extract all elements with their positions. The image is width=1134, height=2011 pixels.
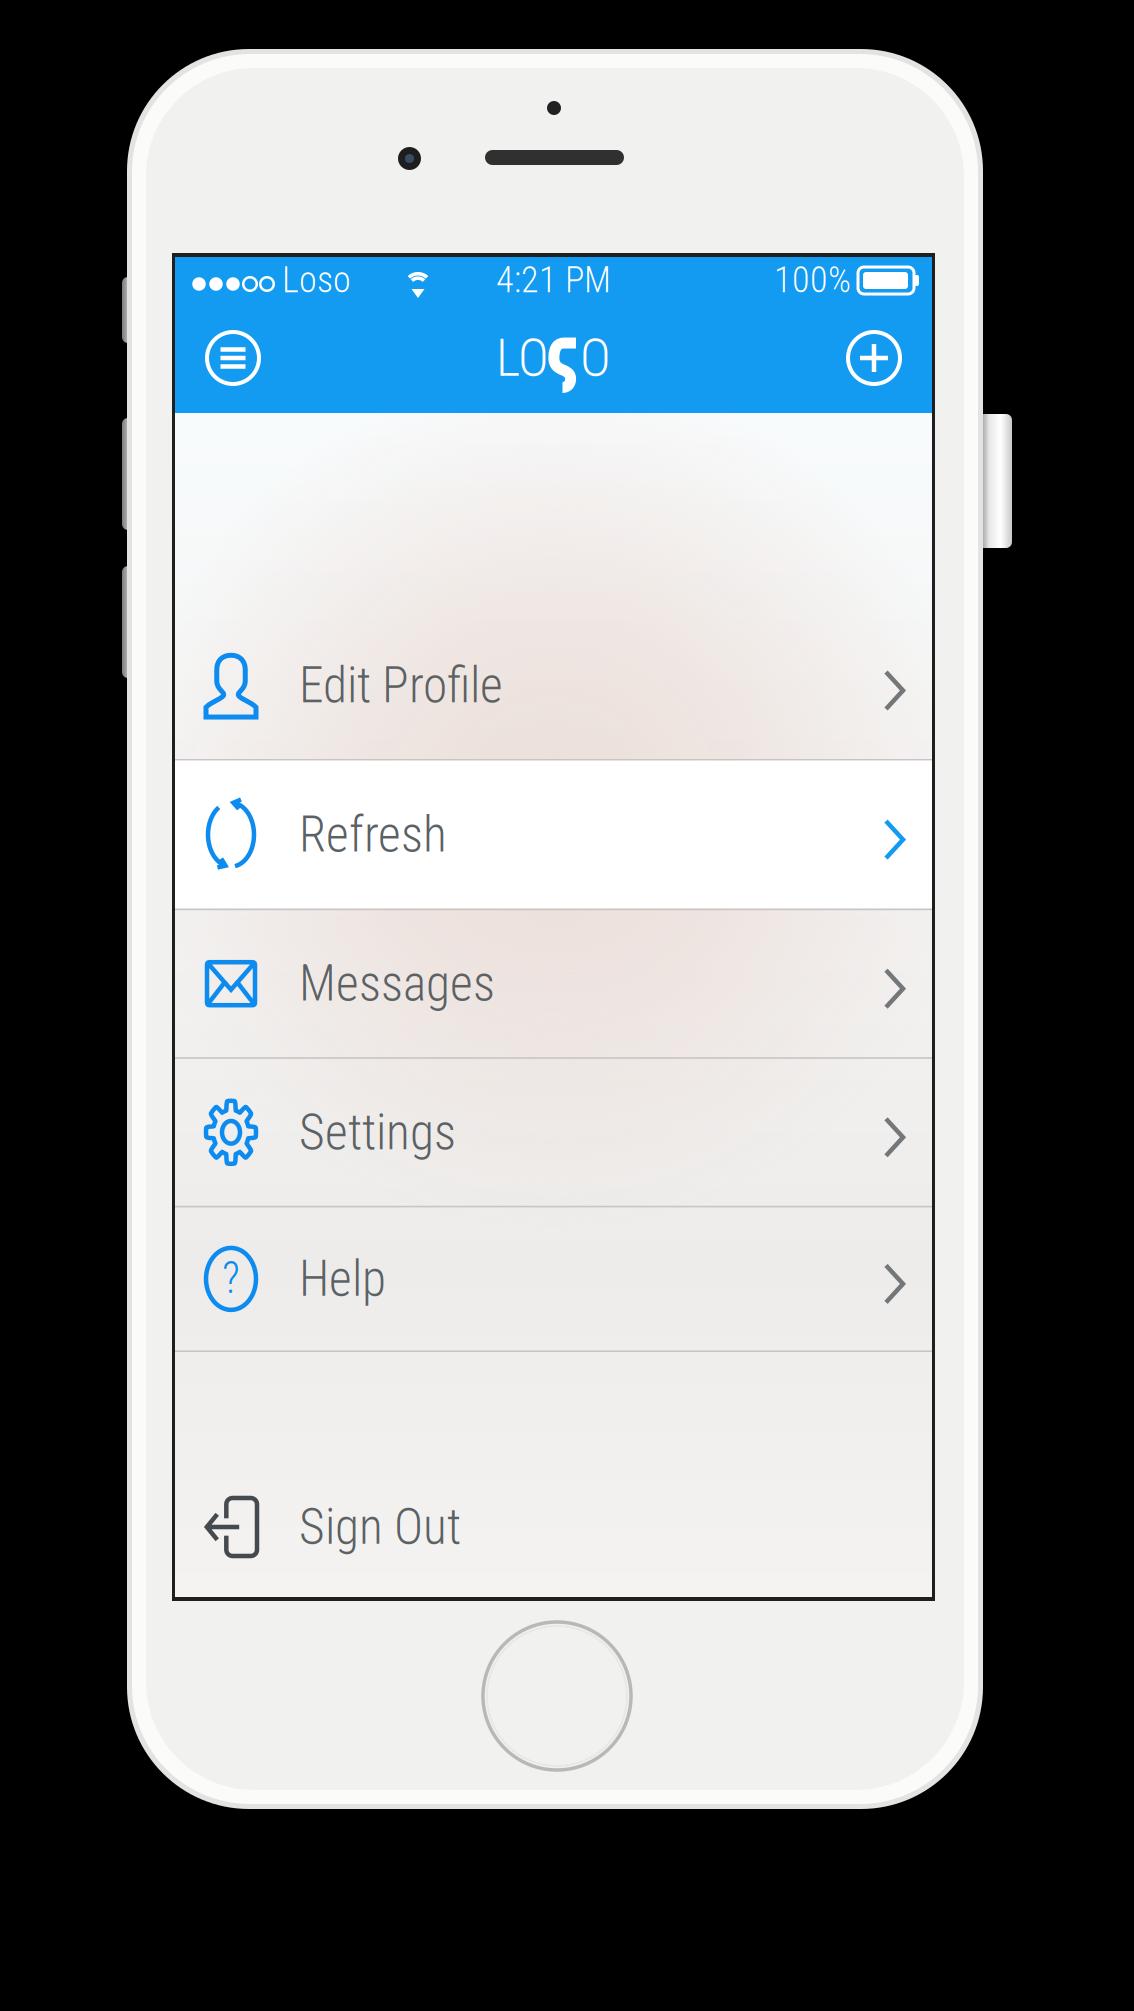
staticText: Messages (299, 955, 495, 1013)
staticText: LO (496, 327, 549, 388)
staticText: Refresh (299, 806, 447, 863)
button[interactable]: Messages (175, 910, 932, 1057)
staticText: Settings (299, 1103, 456, 1161)
staticText: Loso (282, 259, 351, 301)
staticText: ? (222, 1252, 240, 1304)
button[interactable]: Settings (175, 1059, 932, 1206)
button[interactable]: Add (834, 318, 914, 398)
button[interactable]: Menu (193, 318, 273, 398)
staticText: 100% (774, 259, 851, 301)
staticText: Help (299, 1250, 386, 1308)
staticText: O (580, 327, 611, 388)
button[interactable]: Edit Profile (175, 612, 932, 759)
staticText: Sign Out (299, 1498, 461, 1556)
staticText: 4:21 PM (496, 259, 611, 301)
staticText: Edit Profile (299, 657, 503, 714)
button[interactable]: Sign Out (175, 1457, 932, 1597)
button[interactable]: Refresh (175, 761, 932, 909)
button[interactable]: ? (175, 1207, 932, 1350)
